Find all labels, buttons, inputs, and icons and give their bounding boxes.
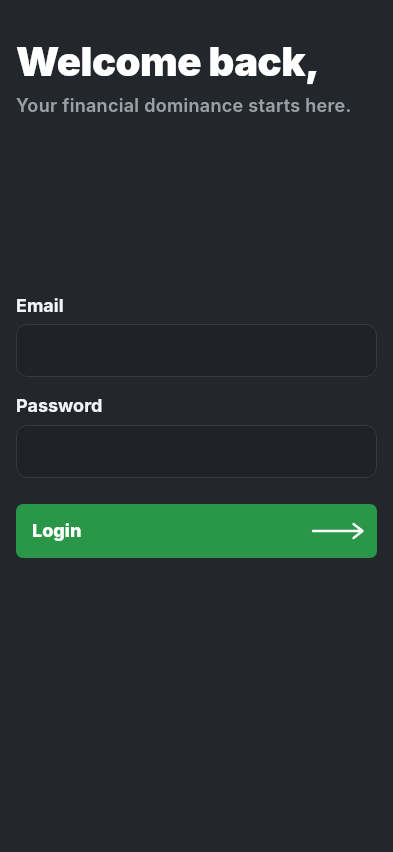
button[interactable]	[16, 324, 377, 377]
button[interactable]	[16, 425, 377, 478]
staticText: Login	[32, 520, 82, 542]
button[interactable]: Login	[16, 504, 377, 558]
staticText: Welcome back,	[16, 37, 320, 85]
staticText: Email	[16, 295, 64, 317]
staticText: Your financial dominance starts here.	[16, 95, 352, 117]
staticText: Password	[16, 395, 103, 417]
